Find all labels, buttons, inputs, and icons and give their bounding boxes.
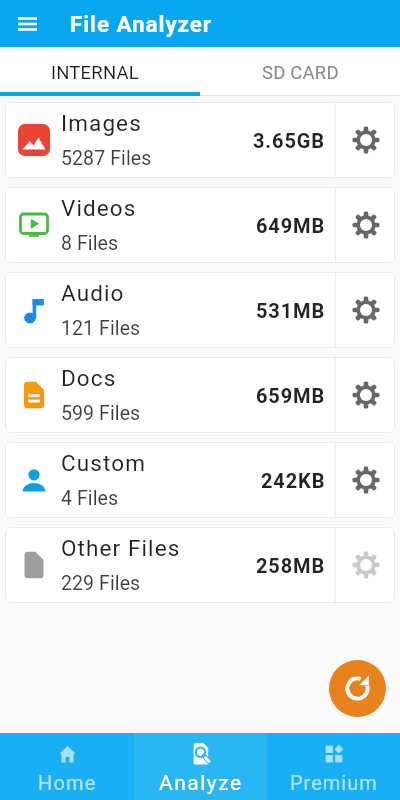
button[interactable]: Images — [5, 102, 395, 178]
staticText: 659MB — [256, 384, 326, 407]
button[interactable]: INTERNAL — [0, 47, 200, 92]
staticText: File Analyzer — [70, 11, 212, 37]
staticText: Home — [38, 771, 97, 794]
staticText: 649MB — [256, 214, 326, 237]
button[interactable] — [336, 357, 395, 433]
button[interactable]: Custom — [5, 442, 395, 518]
button[interactable] — [336, 187, 395, 263]
button[interactable] — [329, 660, 386, 717]
staticText: Custom — [61, 450, 146, 476]
staticText: Audio — [61, 280, 125, 306]
button[interactable] — [0, 0, 54, 47]
staticText: 3.65GB — [253, 129, 326, 152]
staticText: 229 Files — [61, 572, 141, 595]
staticText: 121 Files — [61, 317, 141, 340]
staticText: SD CARD — [262, 62, 339, 84]
button[interactable] — [336, 527, 395, 603]
button[interactable] — [336, 102, 395, 178]
button[interactable]: Premium — [267, 733, 400, 800]
staticText: INTERNAL — [51, 62, 139, 84]
staticText: 258MB — [256, 554, 326, 577]
staticText: 599 Files — [61, 402, 141, 425]
button[interactable]: SD CARD — [200, 47, 400, 92]
staticText: 5287 Files — [61, 147, 152, 170]
button[interactable]: Home — [0, 733, 134, 800]
button[interactable]: Audio — [5, 272, 395, 348]
button[interactable]: Analyze — [134, 733, 267, 800]
button[interactable] — [336, 442, 395, 518]
button[interactable] — [336, 272, 395, 348]
staticText: Other Files — [61, 535, 181, 561]
staticText: Images — [61, 110, 142, 136]
staticText: 242KB — [261, 469, 326, 492]
button[interactable]: Docs — [5, 357, 395, 433]
staticText: 8 Files — [61, 232, 119, 255]
staticText: Videos — [61, 195, 137, 221]
button[interactable]: Videos — [5, 187, 395, 263]
button[interactable]: Other Files — [5, 527, 395, 603]
staticText: 531MB — [256, 299, 326, 322]
staticText: Premium — [290, 771, 378, 794]
staticText: 4 Files — [61, 487, 119, 510]
staticText: Docs — [61, 365, 117, 391]
staticText: Analyze — [159, 771, 243, 796]
